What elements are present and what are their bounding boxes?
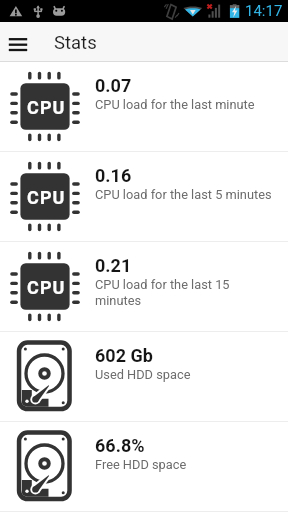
staticText: 0.07 xyxy=(95,75,132,96)
staticText: Stats xyxy=(54,32,97,54)
staticText: CPU load for the last 15 minutes xyxy=(95,277,274,309)
staticText: CPU xyxy=(27,187,66,208)
button[interactable]: CPU xyxy=(0,242,288,331)
staticText: 0.21 xyxy=(95,255,132,276)
staticText: CPU load for the last 5 minutes xyxy=(95,187,272,202)
staticText: 0.16 xyxy=(95,165,132,186)
button[interactable]: 602 Gb xyxy=(0,332,288,421)
staticText: CPU xyxy=(27,97,66,118)
button[interactable]: Open navigation drawer xyxy=(0,24,36,60)
button[interactable]: CPU xyxy=(0,62,288,151)
staticText: 602 Gb xyxy=(95,345,153,366)
button[interactable]: 66.8% xyxy=(0,422,288,511)
staticText: Used HDD space xyxy=(95,367,191,382)
staticText: CPU load for the last minute xyxy=(95,97,255,112)
button[interactable]: CPU xyxy=(0,152,288,241)
staticText: 66.8% xyxy=(95,435,145,456)
staticText: CPU xyxy=(27,277,66,298)
staticText: Free HDD space xyxy=(95,457,187,472)
staticText: 14:17 xyxy=(245,2,283,20)
